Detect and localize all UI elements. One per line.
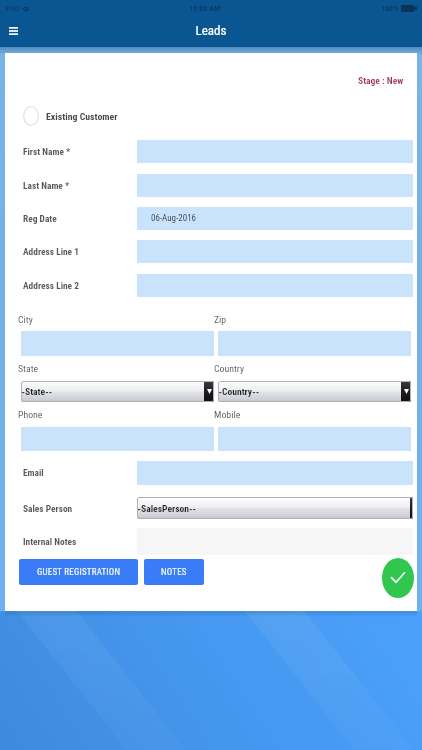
staticText: --SalesPerson--: [137, 503, 197, 514]
staticText: Leads: [0, 23, 422, 38]
button[interactable]: --Country--: [218, 381, 411, 402]
staticText: 06-Aug-2016: [151, 213, 197, 224]
button[interactable]: GUEST REGISTRATION: [19, 559, 138, 585]
staticText: Mobile: [214, 409, 241, 420]
staticText: Country: [214, 363, 245, 374]
staticText: 100%: [381, 4, 399, 13]
staticText: First Name *: [23, 146, 71, 157]
staticText: Address Line 2: [23, 280, 80, 291]
staticText: NOTES: [161, 567, 187, 578]
staticText: 11:00 AM: [189, 4, 221, 13]
staticText: Stage : New: [358, 75, 404, 86]
staticText: City: [18, 314, 33, 325]
staticText: Sales Person: [23, 503, 73, 514]
staticText: Phone: [18, 409, 43, 420]
staticText: --State--: [21, 386, 53, 397]
staticText: GUEST REGISTRATION: [37, 567, 121, 578]
button[interactable]: Menu: [0, 19, 26, 43]
staticText: Address Line 1: [23, 246, 80, 257]
staticText: Reg Date: [23, 213, 57, 224]
staticText: iPad: [5, 4, 20, 13]
staticText: Email: [23, 467, 44, 478]
button[interactable]: 06-Aug-2016: [137, 207, 413, 230]
staticText: State: [18, 363, 39, 374]
button[interactable]: --SalesPerson--: [137, 497, 413, 519]
staticText: Existing Customer: [46, 111, 118, 122]
staticText: --Country--: [218, 386, 260, 397]
staticText: Zip: [214, 314, 227, 325]
button[interactable]: NOTES: [144, 559, 204, 585]
staticText: Internal Notes: [23, 536, 77, 547]
button[interactable]: Existing Customer: [23, 106, 118, 126]
button[interactable]: Save: [382, 558, 414, 598]
button[interactable]: --State--: [21, 381, 214, 402]
staticText: Last Name *: [23, 180, 70, 191]
